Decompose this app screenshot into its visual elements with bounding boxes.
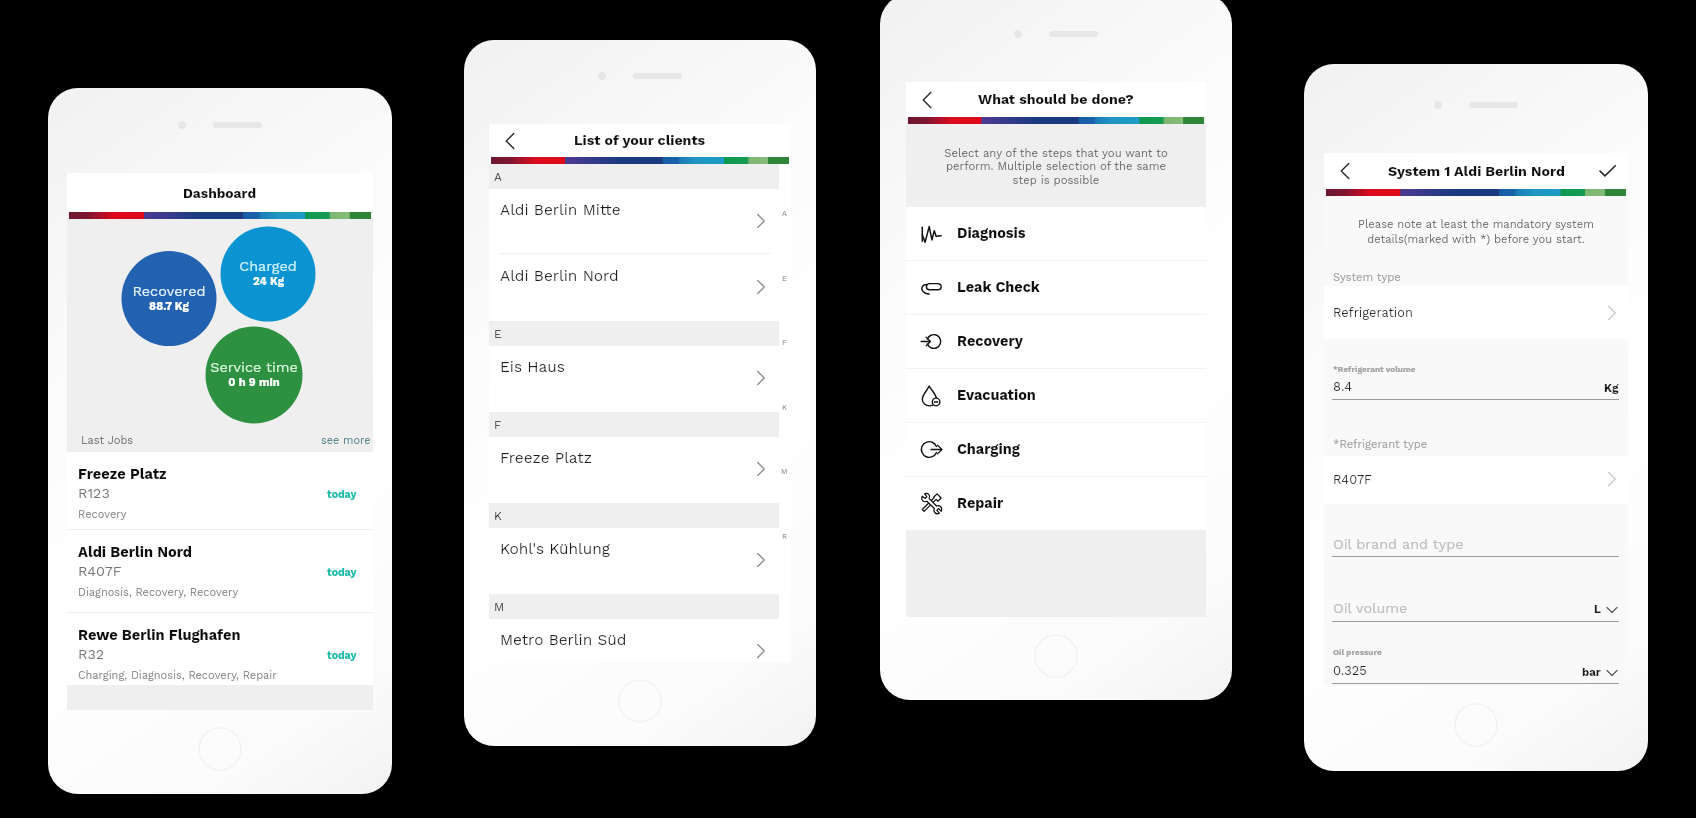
staticText: Kg: [1604, 381, 1619, 394]
button[interactable]: Freeze Platz: [489, 437, 779, 503]
staticText: Aldi Berlin Mitte: [500, 201, 621, 219]
staticText: Diagnosis: [957, 225, 1026, 242]
button[interactable]: Back: [915, 88, 939, 112]
button[interactable]: Evacuation: [906, 369, 1206, 422]
staticText: Dashboard: [183, 185, 257, 201]
staticText: Freeze Platz: [500, 449, 592, 467]
button[interactable]: Confirm: [1595, 159, 1619, 183]
staticText: A: [782, 209, 787, 218]
button[interactable]: Charging: [906, 423, 1206, 476]
button[interactable]: Leak Check: [906, 261, 1206, 314]
staticText: Freeze Platz: [78, 465, 167, 482]
staticText: Charging: [957, 441, 1020, 458]
staticText: see more: [321, 434, 371, 447]
button[interactable]: Aldi Berlin Mitte: [489, 189, 779, 255]
staticText: today: [327, 649, 357, 661]
staticText: Metro Berlin Süd: [500, 631, 627, 649]
staticText: F: [494, 418, 502, 432]
staticText: bar: [1582, 665, 1601, 678]
button[interactable]: Kohl's Kühlung: [489, 528, 779, 594]
staticText: A: [494, 170, 502, 184]
staticText: Oil pressure: [1333, 647, 1382, 657]
staticText: R407F: [1333, 472, 1372, 487]
staticText: *Refrigerant volume: [1333, 364, 1416, 374]
button[interactable]: Back: [498, 129, 522, 153]
staticText: Rewe Berlin Flughafen: [78, 626, 241, 643]
button[interactable]: Metro Berlin Süd: [489, 619, 779, 662]
staticText: 8.4: [1333, 379, 1353, 394]
button[interactable]: Back: [1333, 159, 1357, 183]
button[interactable]: Recovery: [906, 315, 1206, 368]
staticText: E: [782, 274, 787, 283]
staticText: R32: [78, 646, 105, 663]
staticText: Select any of the steps that you want to…: [942, 146, 1170, 187]
staticText: What should be done?: [978, 91, 1134, 108]
staticText: E: [494, 327, 502, 341]
staticText: System 1 Aldi Berlin Nord: [1388, 163, 1565, 180]
button[interactable]: Repair: [906, 477, 1206, 530]
staticText: List of your clients: [574, 132, 706, 149]
staticText: Please note at least the mandatory syste…: [1352, 218, 1600, 245]
staticText: Recovery: [957, 333, 1023, 350]
staticText: 0 h 9 min: [228, 376, 280, 389]
staticText: Charging, Diagnosis, Recovery, Repair: [78, 669, 277, 682]
staticText: Service time: [210, 359, 298, 376]
staticText: K: [494, 509, 502, 523]
staticText: *Refrigerant type: [1333, 438, 1428, 451]
staticText: Charged: [239, 258, 297, 275]
staticText: Last Jobs: [81, 434, 134, 447]
staticText: Diagnosis, Recovery, Recovery: [78, 586, 239, 599]
button[interactable]: Diagnosis: [906, 207, 1206, 260]
staticText: Oil volume: [1333, 600, 1408, 617]
staticText: 88.7 Kg: [149, 300, 189, 313]
staticText: Recovery: [78, 508, 127, 521]
staticText: L: [1594, 602, 1601, 615]
staticText: F: [782, 338, 787, 347]
staticText: Refrigeration: [1333, 305, 1413, 320]
staticText: Leak Check: [957, 279, 1040, 296]
button[interactable]: R407F: [1324, 456, 1628, 504]
staticText: Kohl's Kühlung: [500, 540, 610, 558]
staticText: K: [782, 403, 787, 412]
button[interactable]: Aldi Berlin Nord: [67, 530, 373, 612]
button[interactable]: Rewe Berlin Flughafen: [67, 613, 373, 685]
staticText: Oil brand and type: [1333, 536, 1464, 553]
staticText: Eis Haus: [500, 358, 565, 376]
button[interactable]: see more: [321, 434, 371, 447]
staticText: Aldi Berlin Nord: [500, 267, 619, 285]
button[interactable]: Aldi Berlin Nord: [489, 255, 779, 321]
button[interactable]: Eis Haus: [489, 346, 779, 412]
staticText: System type: [1333, 271, 1401, 284]
staticText: today: [327, 488, 357, 500]
staticText: Aldi Berlin Nord: [78, 543, 193, 560]
staticText: Recovered: [132, 283, 206, 300]
staticText: M: [494, 600, 505, 614]
staticText: Repair: [957, 495, 1004, 512]
staticText: Evacuation: [957, 387, 1036, 404]
button[interactable]: Freeze Platz: [67, 452, 373, 529]
staticText: 0.325: [1333, 663, 1367, 678]
staticText: today: [327, 566, 357, 578]
button[interactable]: Refrigeration: [1324, 286, 1628, 339]
staticText: M: [781, 467, 788, 476]
staticText: 24 Kg: [253, 275, 284, 288]
staticText: R123: [78, 485, 110, 502]
staticText: R: [782, 532, 787, 541]
staticText: R407F: [78, 563, 122, 580]
